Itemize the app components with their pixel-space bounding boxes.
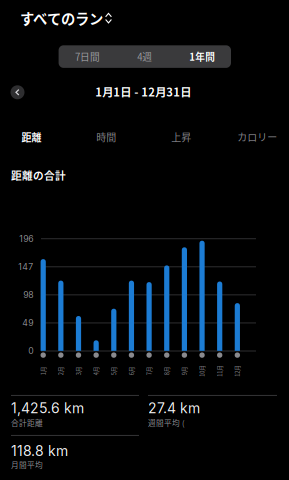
staticText: カロリー bbox=[237, 130, 277, 144]
staticText: 1月 bbox=[39, 367, 48, 375]
button[interactable]: 距離 bbox=[0, 125, 67, 149]
staticText: すべてのラン bbox=[20, 8, 103, 29]
staticText: 合計距離 bbox=[11, 417, 43, 428]
staticText: 7月 bbox=[145, 367, 154, 375]
staticText: 9月 bbox=[180, 367, 189, 375]
button[interactable]: すべてのラン bbox=[20, 6, 140, 30]
staticText: 27.4 km bbox=[148, 400, 200, 417]
button[interactable]: 前の期間 bbox=[5, 80, 29, 104]
button[interactable]: 4週 bbox=[116, 45, 173, 68]
staticText: 118.8 km bbox=[11, 442, 68, 459]
staticText: 196 bbox=[19, 234, 33, 244]
staticText: 4週 bbox=[137, 50, 152, 64]
staticText: 49 bbox=[22, 318, 33, 328]
staticText: 月間平均 bbox=[11, 459, 43, 470]
staticText: 2月 bbox=[56, 367, 65, 375]
staticText: 10月 bbox=[196, 367, 208, 375]
staticText: 0 bbox=[28, 346, 33, 356]
staticText: 7日間 bbox=[75, 50, 100, 64]
button[interactable]: 時間 bbox=[70, 125, 142, 149]
staticText: 距離 bbox=[21, 130, 41, 144]
staticText: 5月 bbox=[109, 367, 118, 375]
staticText: 1年間 bbox=[189, 50, 215, 64]
staticText: 6月 bbox=[127, 367, 136, 375]
staticText: 11月 bbox=[214, 367, 226, 375]
staticText: 8月 bbox=[162, 367, 171, 375]
button[interactable]: 7日間 bbox=[59, 45, 116, 68]
staticText: 上昇 bbox=[171, 130, 191, 144]
staticText: 3月 bbox=[74, 367, 83, 375]
staticText: 距離の合計 bbox=[11, 167, 66, 182]
button[interactable]: 上昇 bbox=[145, 125, 217, 149]
button[interactable]: カロリー bbox=[221, 125, 289, 149]
staticText: 週間平均 ( bbox=[148, 417, 185, 428]
staticText: 12月 bbox=[231, 367, 243, 375]
staticText: 4月 bbox=[92, 367, 101, 375]
button[interactable]: 1年間 bbox=[173, 45, 231, 68]
staticText: 1,425.6 km bbox=[11, 400, 84, 417]
staticText: 1月1日 - 12月31日 bbox=[95, 83, 191, 100]
staticText: 98 bbox=[23, 290, 33, 300]
staticText: 時間 bbox=[96, 130, 116, 144]
staticText: 147 bbox=[18, 262, 33, 272]
